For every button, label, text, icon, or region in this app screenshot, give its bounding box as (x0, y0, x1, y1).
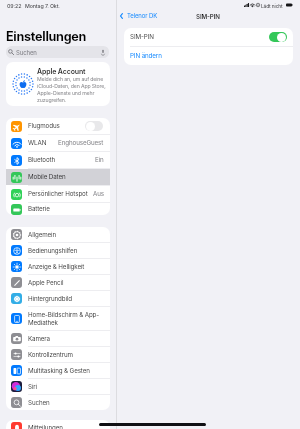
staticText: Batterie (28, 205, 110, 213)
button[interactable]: PIN ändern (124, 47, 293, 65)
staticText: Persönlicher Hotspot (28, 190, 93, 198)
button[interactable]: Apple Pencil (6, 275, 110, 290)
staticText: WLAN (28, 139, 58, 147)
staticText: SIM-PIN (196, 13, 220, 21)
staticText: Hintergrundbild (28, 295, 110, 303)
staticText: Bluetooth (28, 156, 95, 164)
staticText: Lädt nicht (261, 3, 283, 9)
button[interactable]: Mitteilungen (6, 420, 110, 429)
staticText: 09:22 (7, 3, 22, 9)
button[interactable]: Suchen (6, 395, 110, 410)
button[interactable]: Suchen (6, 46, 109, 58)
button[interactable]: Kamera (6, 331, 110, 346)
staticText: Flugmodus (28, 122, 85, 130)
staticText: Apple Pencil (28, 279, 110, 287)
button[interactable]: Bedienungshilfen (6, 243, 110, 258)
button[interactable]: Allgemein (6, 227, 110, 242)
button[interactable]: Telenor DK (120, 12, 158, 19)
staticText: Mobile Daten (28, 173, 110, 181)
button[interactable]: WLAN (6, 135, 110, 151)
button[interactable]: Batterie (6, 203, 110, 215)
button[interactable]: Home-Bildschirm & App-Mediathek (6, 307, 110, 330)
staticText: Anzeige & Helligkeit (28, 263, 110, 271)
staticText: Kontrollzentrum (28, 351, 110, 359)
staticText: Allgemein (28, 231, 110, 239)
staticText: Multitasking & Gesten (28, 367, 110, 375)
staticText: Telenor DK (127, 12, 158, 19)
button[interactable]: Hintergrundbild (6, 291, 110, 306)
staticText: Aus (93, 190, 104, 198)
staticText: Home-Bildschirm & App-Mediathek (28, 311, 110, 327)
staticText: Suchen (16, 49, 101, 56)
staticText: Ein (95, 156, 104, 164)
button[interactable]: Persönlicher Hotspot (6, 186, 110, 202)
staticText: Siri (28, 383, 110, 391)
staticText: Mitteilungen (28, 424, 110, 429)
button[interactable]: Multitasking & Gesten (6, 363, 110, 378)
button[interactable]: Anzeige & Helligkeit (6, 259, 110, 274)
button[interactable]: Flugmodus (6, 118, 110, 134)
staticText: PIN ändern (130, 52, 162, 60)
button[interactable]: Mobile Daten (6, 169, 110, 185)
staticText: Suchen (28, 399, 110, 407)
button[interactable]: Bluetooth (6, 152, 110, 168)
button[interactable]: Siri (6, 379, 110, 394)
staticText: EnghouseGuest (58, 139, 104, 147)
button[interactable]: Apple Account (6, 62, 110, 106)
staticText: Melde dich an, um auf deine iCloud-Daten… (37, 76, 110, 103)
staticText: Apple Account (37, 67, 86, 75)
button[interactable]: SIM-PIN (124, 28, 293, 46)
button[interactable]: Kontrollzentrum (6, 347, 110, 362)
staticText: Kamera (28, 335, 110, 343)
staticText: SIM-PIN (130, 33, 269, 41)
staticText: Bedienungshilfen (28, 247, 110, 255)
staticText: Einstellungen (6, 29, 87, 44)
staticText: Montag 7. Okt. (25, 3, 60, 9)
